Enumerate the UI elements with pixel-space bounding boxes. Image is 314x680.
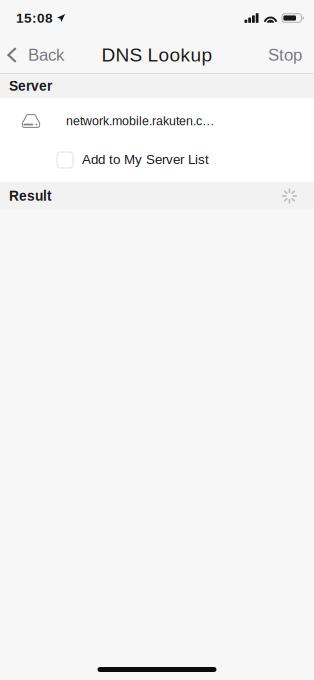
staticText: Stop (268, 46, 302, 64)
staticText: DNS Lookup (101, 44, 212, 66)
button[interactable]: Stop (256, 36, 314, 74)
staticText: 15:08 (16, 10, 53, 26)
staticText: Result (9, 188, 52, 204)
button[interactable]: network.mobile.rakuten.c… (0, 98, 314, 144)
staticText: Add to My Server List (82, 152, 209, 167)
staticText: Server (9, 78, 52, 94)
button[interactable]: Back (0, 36, 74, 74)
staticText: network.mobile.rakuten.c… (66, 114, 214, 128)
button[interactable]: Add to My Server List (0, 144, 314, 182)
staticText: Back (28, 46, 64, 64)
